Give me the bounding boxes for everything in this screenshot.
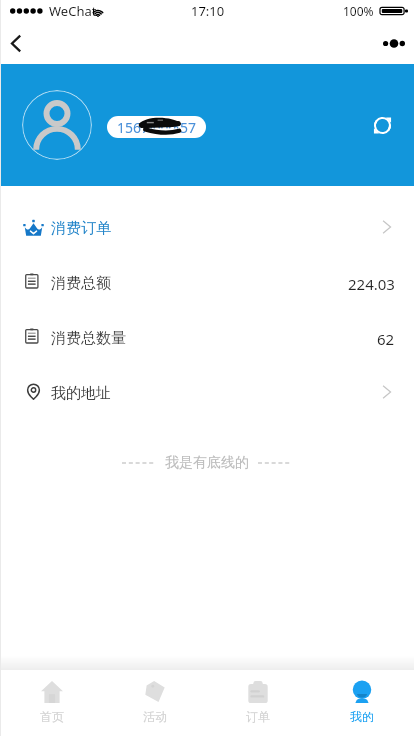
button[interactable]: 活动 — [103, 670, 206, 736]
button[interactable]: 消费总数量 — [0, 311, 414, 366]
button[interactable]: 消费订单 — [0, 201, 414, 256]
button[interactable]: Avatar — [22, 90, 92, 160]
staticText: 224.03 — [348, 274, 395, 294]
button[interactable]: 订单 — [206, 670, 310, 736]
staticText: 100% — [343, 3, 374, 19]
staticText: 消费总数量 — [51, 329, 126, 348]
button[interactable]: Back — [0, 22, 32, 64]
staticText: 我的 — [350, 709, 374, 724]
button[interactable]: 首页 — [0, 670, 103, 736]
staticText: WeChat — [49, 2, 97, 20]
staticText: 消费总额 — [51, 274, 111, 293]
button[interactable]: More options — [374, 22, 414, 64]
staticText: 17:10 — [191, 2, 225, 20]
staticText: 我是有底线的 — [165, 454, 249, 472]
staticText: 首页 — [40, 709, 64, 724]
button[interactable]: 我的地址 — [0, 366, 414, 421]
staticText: 62 — [377, 329, 395, 349]
staticText: 我的地址 — [51, 384, 111, 403]
button[interactable]: 1567****57 — [107, 116, 206, 138]
button[interactable]: 消费总额 — [0, 256, 414, 311]
staticText: 活动 — [143, 709, 167, 724]
staticText: 1567****57 — [117, 118, 196, 137]
button[interactable]: 我的 — [310, 670, 414, 736]
staticText: 消费订单 — [51, 219, 111, 238]
staticText: 订单 — [246, 709, 270, 724]
button[interactable]: Refresh — [364, 107, 400, 143]
